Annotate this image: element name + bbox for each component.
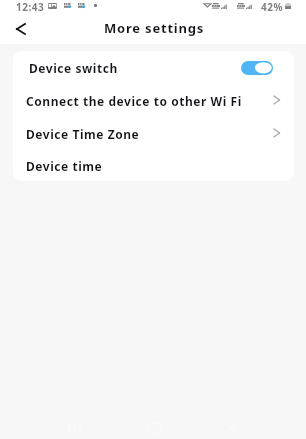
staticText: Device Time Zone: [26, 126, 140, 142]
staticText: Device switch: [29, 60, 118, 76]
button[interactable]: Device switch: [13, 51, 294, 83]
button[interactable]: Back: [6, 16, 35, 41]
button[interactable]: Device Time Zone: [13, 116, 294, 148]
staticText: More settings: [104, 19, 205, 37]
button[interactable]: Device time: [13, 148, 294, 180]
staticText: Connect the device to other Wi Fi: [26, 93, 242, 109]
staticText: 42%: [261, 0, 283, 14]
staticText: 12:43: [16, 0, 45, 14]
button[interactable]: Connect the device to other Wi Fi: [13, 83, 294, 115]
staticText: Device time: [26, 158, 103, 174]
